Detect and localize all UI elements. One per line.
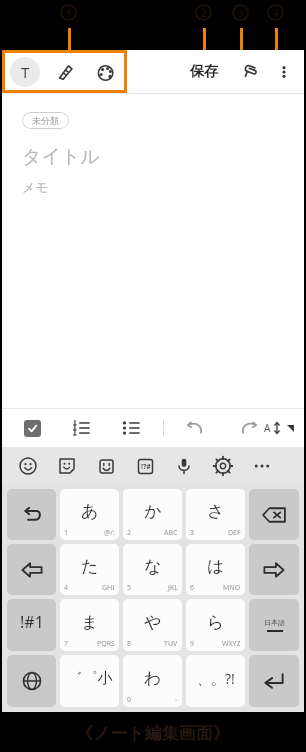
staticText: 1 bbox=[66, 6, 72, 20]
button[interactable]: Change language bbox=[7, 655, 56, 707]
button[interactable]: mic bbox=[170, 452, 198, 480]
staticText: さ bbox=[207, 501, 225, 522]
staticText: 8 bbox=[127, 639, 132, 649]
staticText: 2 bbox=[127, 528, 132, 538]
staticText: 6 bbox=[190, 583, 195, 593]
staticText: な bbox=[144, 556, 162, 577]
button[interactable]: 、。?! bbox=[186, 655, 245, 707]
staticText: ABC bbox=[164, 528, 178, 538]
staticText: ま bbox=[81, 612, 99, 633]
staticText: PQRS bbox=[97, 639, 115, 649]
staticText: わ bbox=[144, 668, 162, 689]
staticText: @/: bbox=[104, 528, 115, 538]
staticText: た bbox=[81, 556, 99, 577]
button[interactable]: settings bbox=[209, 452, 237, 480]
button[interactable]: は bbox=[186, 544, 245, 595]
staticText: 3 bbox=[238, 6, 244, 20]
button[interactable]: Draw bbox=[52, 58, 80, 86]
staticText: - bbox=[175, 695, 178, 705]
button[interactable]: sticker bbox=[53, 452, 81, 480]
button[interactable]: な bbox=[123, 544, 182, 595]
staticText: MNO bbox=[223, 583, 241, 593]
staticText: メモ bbox=[22, 179, 49, 195]
button[interactable]: symbols bbox=[131, 452, 159, 480]
button[interactable]: Space bbox=[249, 599, 299, 651]
staticText: は bbox=[207, 556, 225, 577]
button[interactable]: Numbered list bbox=[71, 418, 91, 438]
button[interactable]: Cursor left bbox=[7, 544, 56, 595]
staticText: 5 bbox=[127, 583, 132, 593]
staticText: !?# bbox=[141, 462, 151, 472]
staticText: ら bbox=[207, 612, 225, 633]
staticText: A bbox=[264, 421, 271, 435]
button[interactable]: more bbox=[248, 452, 276, 480]
button[interactable]: ま bbox=[60, 599, 119, 651]
button[interactable]: 保存 bbox=[184, 57, 224, 87]
staticText: 未分類 bbox=[32, 115, 59, 126]
staticText: 4 bbox=[64, 583, 69, 593]
button[interactable]: Checklist bbox=[24, 420, 41, 437]
staticText: JKL bbox=[168, 583, 178, 593]
staticText: DEF bbox=[228, 528, 241, 538]
staticText: GHI bbox=[102, 583, 115, 593]
staticText: ゛゜小 bbox=[67, 669, 113, 688]
button[interactable]: Undo bbox=[184, 417, 206, 439]
button[interactable]: わ bbox=[123, 655, 182, 707]
button[interactable]: Delete bbox=[249, 489, 299, 540]
button[interactable]: さ bbox=[186, 489, 245, 540]
button[interactable]: や bbox=[123, 599, 182, 651]
staticText: 日本語 bbox=[264, 618, 285, 627]
button[interactable]: gif bbox=[92, 452, 120, 480]
button[interactable]: Bulleted list bbox=[121, 418, 141, 438]
button[interactable]: Text mode bbox=[10, 57, 40, 87]
staticText: や bbox=[144, 612, 162, 633]
staticText: T bbox=[21, 62, 30, 82]
staticText: 保存 bbox=[190, 63, 218, 81]
button[interactable]: More options bbox=[270, 58, 298, 86]
button[interactable]: ゛゜小 bbox=[60, 655, 119, 707]
button[interactable]: Undo bbox=[7, 489, 56, 540]
staticText: タイトル bbox=[22, 145, 100, 169]
staticText: 7 bbox=[64, 639, 69, 649]
button[interactable]: あ bbox=[60, 489, 119, 540]
button[interactable]: 未分類 bbox=[22, 112, 69, 129]
staticText: TUV bbox=[164, 639, 178, 649]
button[interactable]: か bbox=[123, 489, 182, 540]
staticText: 1 bbox=[64, 528, 69, 538]
staticText: か bbox=[144, 501, 162, 522]
staticText: 2 bbox=[201, 6, 207, 20]
button[interactable]: Text size bbox=[264, 421, 304, 435]
staticText: WXYZ bbox=[222, 639, 241, 649]
button[interactable]: Redo bbox=[238, 417, 260, 439]
button[interactable]: た bbox=[60, 544, 119, 595]
staticText: 《ノート編集画面》 bbox=[76, 723, 230, 744]
button[interactable]: smiley bbox=[14, 452, 42, 480]
button[interactable]: Cursor right bbox=[249, 544, 299, 595]
staticText: 0 bbox=[127, 695, 132, 705]
button[interactable]: Enter bbox=[249, 655, 299, 707]
button[interactable]: Attach bbox=[236, 58, 264, 86]
staticText: 、。?! bbox=[197, 669, 235, 688]
staticText: 9 bbox=[190, 639, 195, 649]
staticText: 4 bbox=[273, 6, 279, 20]
button[interactable]: ら bbox=[186, 599, 245, 651]
button[interactable]: Palette bbox=[92, 58, 120, 86]
staticText: 3 bbox=[190, 528, 195, 538]
staticText: あ bbox=[81, 501, 99, 522]
staticText: !#1 bbox=[20, 611, 44, 633]
button[interactable]: !#1 bbox=[7, 599, 56, 651]
